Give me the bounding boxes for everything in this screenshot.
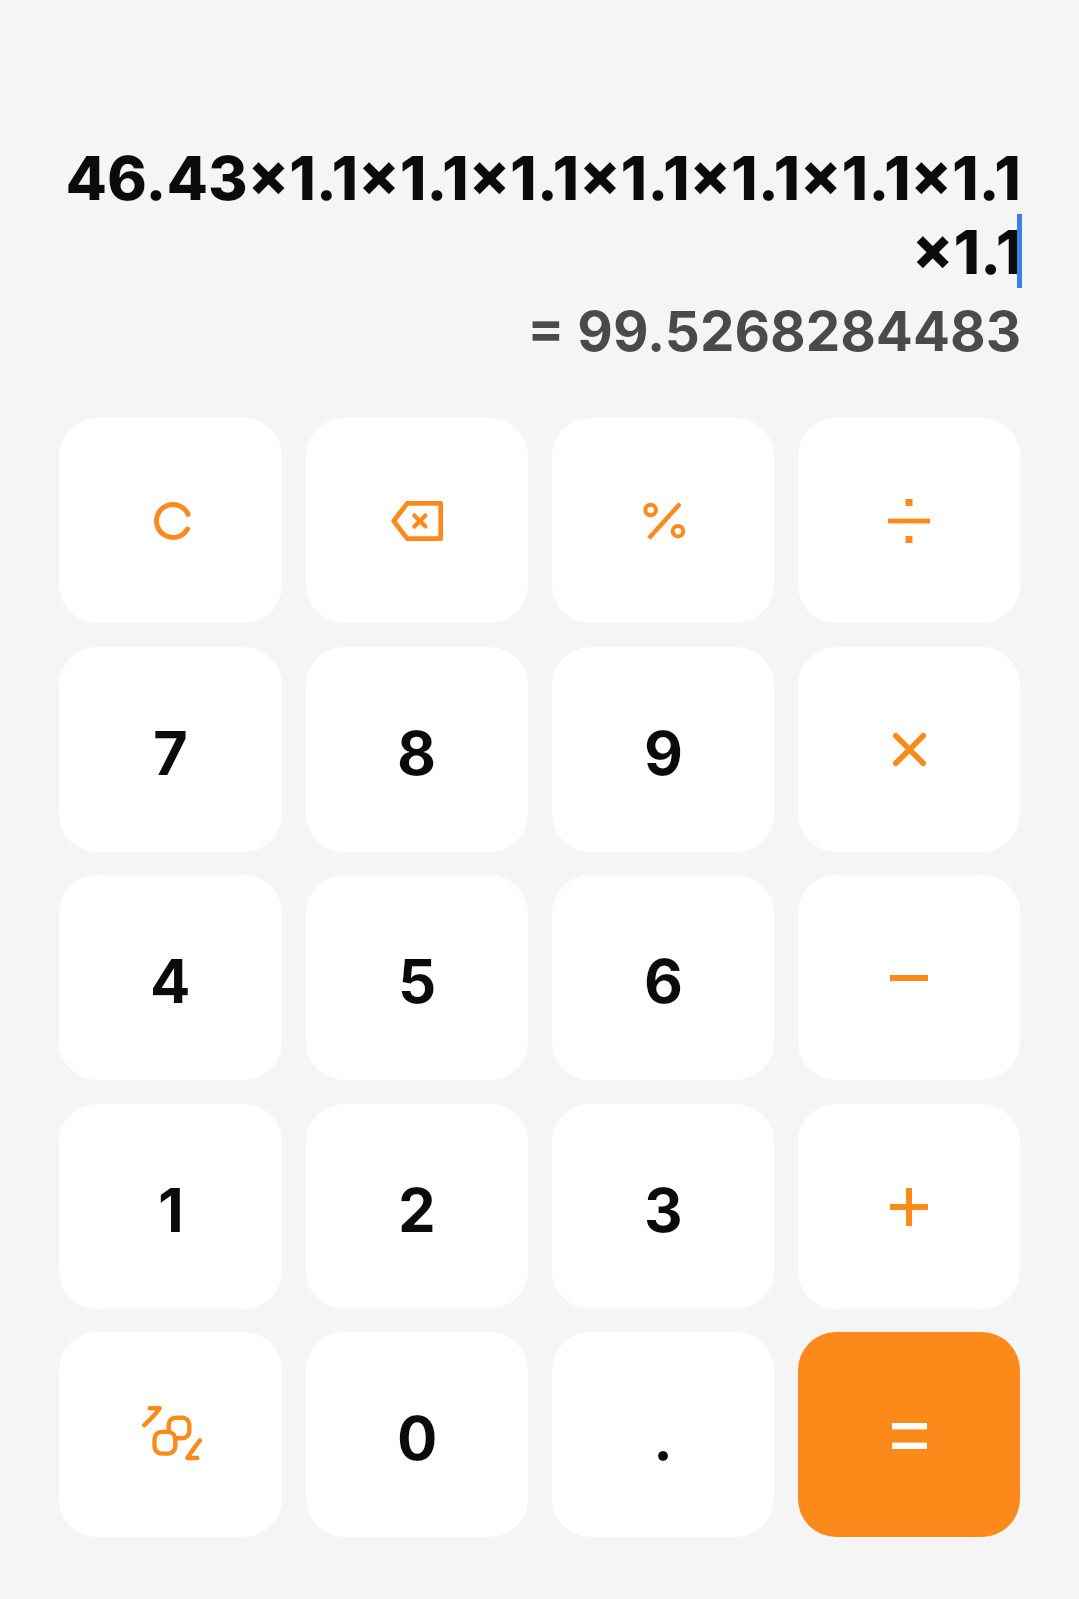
staticText: 5 bbox=[398, 945, 437, 1018]
staticText: 6 bbox=[644, 945, 683, 1018]
button[interactable]: 2 bbox=[306, 1104, 528, 1309]
staticText: 1 bbox=[158, 1174, 184, 1247]
button[interactable]: 3 bbox=[552, 1104, 774, 1309]
staticText: . bbox=[653, 1402, 674, 1475]
button[interactable]: 8 bbox=[306, 647, 528, 852]
button[interactable]: 4 bbox=[59, 875, 282, 1080]
staticText: ×1.1 bbox=[912, 215, 1023, 288]
staticText: 9 bbox=[644, 717, 683, 790]
staticText: 4 bbox=[150, 945, 191, 1018]
button[interactable]: Backspace bbox=[306, 418, 528, 623]
staticText: 0 bbox=[397, 1402, 438, 1475]
button[interactable]: Clear bbox=[59, 418, 282, 623]
button[interactable]: 0 bbox=[306, 1332, 528, 1537]
button[interactable]: Equals bbox=[798, 1332, 1020, 1537]
button[interactable]: Divide bbox=[798, 418, 1020, 623]
button[interactable]: 9 bbox=[552, 647, 774, 852]
button[interactable]: 1 bbox=[59, 1104, 282, 1309]
staticText: 3 bbox=[644, 1174, 683, 1247]
button[interactable]: Convert units bbox=[59, 1332, 282, 1537]
button[interactable]: Minus bbox=[798, 875, 1020, 1080]
button[interactable]: Plus bbox=[798, 1104, 1020, 1309]
staticText: 7 bbox=[153, 717, 188, 790]
button[interactable]: Percent bbox=[552, 418, 774, 623]
staticText: 46.43×1.1×1.1×1.1×1.1×1.1×1.1×1.1 bbox=[59, 141, 1021, 214]
staticText: 8 bbox=[397, 717, 437, 790]
button[interactable]: 7 bbox=[59, 647, 282, 852]
button[interactable]: Multiply bbox=[798, 647, 1020, 852]
staticText: 2 bbox=[398, 1174, 436, 1247]
button[interactable]: Decimal point bbox=[552, 1332, 774, 1537]
button[interactable]: 5 bbox=[306, 875, 528, 1080]
staticText: = 99.5268284483 bbox=[59, 298, 1021, 364]
button[interactable]: 6 bbox=[552, 875, 774, 1080]
